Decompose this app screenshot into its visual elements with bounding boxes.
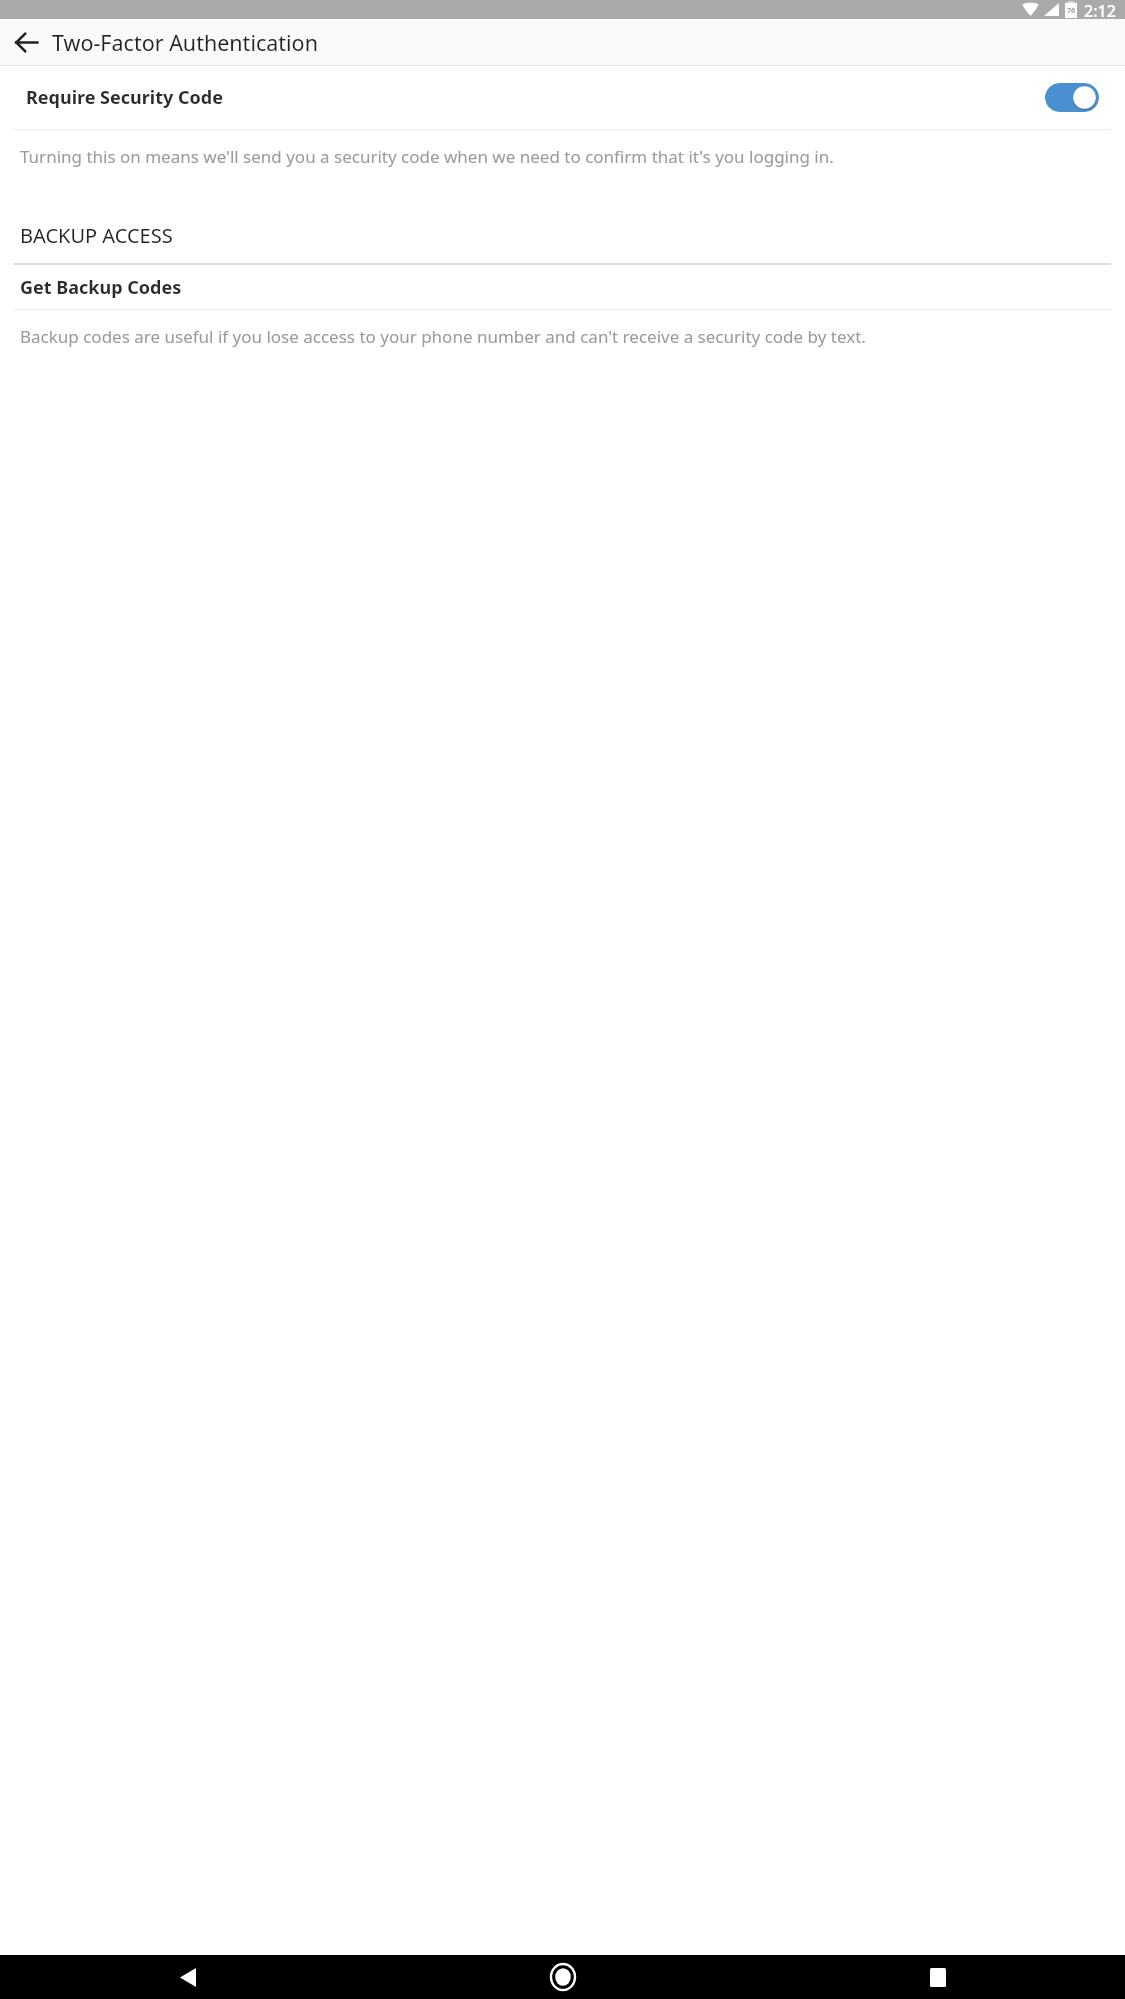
staticText: Require Security Code — [26, 85, 1045, 110]
staticText: Turning this on means we'll send you a s… — [20, 145, 1091, 168]
staticText: Two-Factor Authentication — [52, 28, 318, 57]
staticText: 2:12 — [1084, 0, 1116, 19]
button[interactable]: Get Backup Codes — [0, 265, 1125, 309]
button[interactable]: Recent apps — [750, 1955, 1125, 1999]
button[interactable]: Home — [375, 1955, 750, 1999]
staticText: 76 — [1067, 6, 1076, 16]
button[interactable]: Require Security Code — [0, 66, 1125, 129]
staticText: BACKUP ACCESS — [20, 222, 173, 249]
button[interactable]: Back — [0, 1955, 375, 1999]
button[interactable]: Back — [6, 22, 46, 62]
button[interactable]: Require Security Code toggle — [1045, 83, 1099, 112]
staticText: Get Backup Codes — [20, 275, 182, 300]
staticText: Backup codes are useful if you lose acce… — [20, 325, 1103, 348]
